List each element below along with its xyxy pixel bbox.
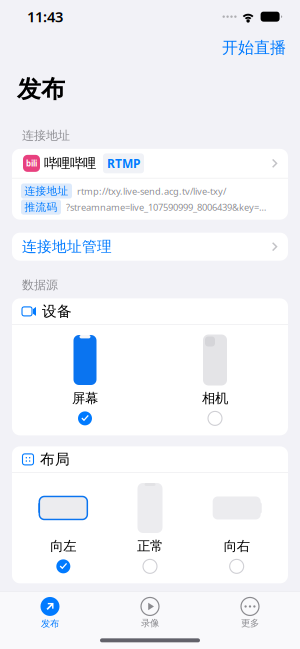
button[interactable]: 更多 [200, 597, 300, 629]
staticText: 11:43 [27, 7, 63, 26]
staticText: bili [26, 158, 37, 169]
staticText: 正常 [137, 538, 163, 554]
staticText: RTMP [107, 155, 140, 171]
staticText: 数据源 [22, 278, 58, 292]
staticText: 向右 [224, 538, 250, 554]
staticText: 发布 [41, 618, 59, 629]
button[interactable]: 正常 [107, 483, 193, 573]
staticText: 推流码 [24, 201, 57, 214]
staticText: 连接地址 [22, 128, 70, 143]
staticText: 哔哩哔哩 [44, 155, 96, 172]
staticText: 设备 [42, 302, 72, 320]
button[interactable]: 相机 [150, 335, 280, 425]
staticText: 相机 [202, 390, 228, 406]
staticText: 连接地址 [24, 184, 68, 198]
staticText: 连接地址管理 [22, 238, 112, 256]
button[interactable]: 录像 [100, 597, 200, 629]
staticText: 开始直播 [222, 38, 286, 57]
button[interactable]: bili [12, 149, 288, 178]
staticText: ?streamname=live_107590999_8006439&key=a… [66, 201, 266, 213]
button[interactable]: 屏幕 [20, 335, 150, 425]
button[interactable]: 向右 [193, 483, 280, 573]
button[interactable]: 发布 [0, 597, 100, 629]
staticText: 向左 [50, 538, 76, 554]
button[interactable]: 连接地址管理 [12, 233, 288, 261]
staticText: 更多 [241, 617, 259, 629]
staticText: 发布 [17, 75, 65, 104]
staticText: 屏幕 [72, 390, 98, 406]
staticText: 布局 [40, 450, 70, 468]
staticText: 录像 [141, 617, 159, 629]
button[interactable]: 开始直播 [218, 33, 290, 62]
button[interactable]: 向左 [20, 483, 107, 573]
staticText: rtmp://txy.live-send.acg.tv/live-txy/ [77, 185, 226, 197]
